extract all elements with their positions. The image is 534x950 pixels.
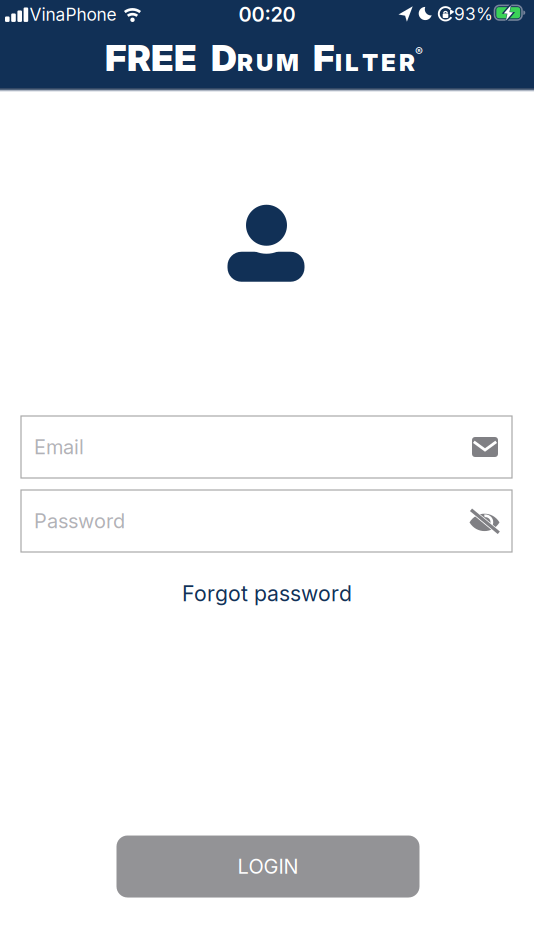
- staticText: Password: [34, 509, 125, 533]
- staticText: ®: [415, 45, 423, 59]
- staticText: Email: [34, 435, 84, 459]
- button[interactable]: Forgot password: [182, 581, 352, 606]
- staticText: 00:20: [238, 3, 295, 26]
- staticText: F: [313, 37, 335, 79]
- staticText: I L T E R: [335, 48, 415, 76]
- staticText: 93%: [454, 4, 493, 24]
- staticText: FREE: [105, 37, 197, 79]
- textField[interactable]: Email: [34, 435, 472, 459]
- staticText: R U M: [237, 48, 299, 76]
- button[interactable]: Show password: [469, 509, 500, 533]
- staticText: D: [211, 37, 237, 79]
- staticText: Forgot password: [182, 581, 352, 606]
- secureTextField[interactable]: Password: [34, 509, 469, 533]
- button[interactable]: LOGIN: [116, 835, 419, 897]
- staticText: LOGIN: [237, 855, 298, 878]
- staticText: VinaPhone: [29, 4, 116, 25]
